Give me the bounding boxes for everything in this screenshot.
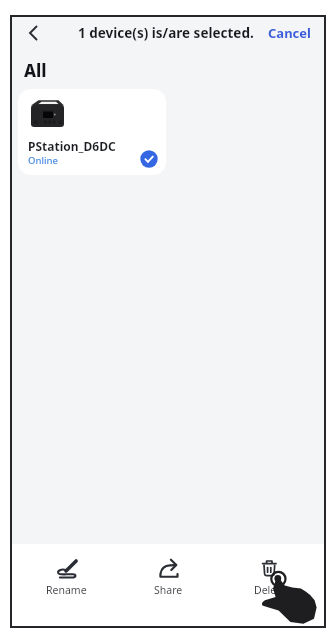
button[interactable]: Cancel xyxy=(268,24,311,42)
button[interactable]: Delete xyxy=(219,556,321,628)
staticText: Share xyxy=(154,583,183,597)
button[interactable]: Share xyxy=(117,556,219,628)
staticText: All xyxy=(24,59,47,82)
staticText: 1 device(s) is/are selected. xyxy=(78,24,254,42)
staticText: Cancel xyxy=(268,24,311,42)
button[interactable]: PStation_D6DC xyxy=(18,89,166,175)
staticText: Rename xyxy=(46,583,87,597)
staticText: Online xyxy=(28,154,58,167)
button[interactable]: Rename xyxy=(15,556,117,628)
staticText: Delete xyxy=(254,583,286,597)
staticText: PStation_D6DC xyxy=(28,138,116,154)
button[interactable] xyxy=(21,20,47,46)
